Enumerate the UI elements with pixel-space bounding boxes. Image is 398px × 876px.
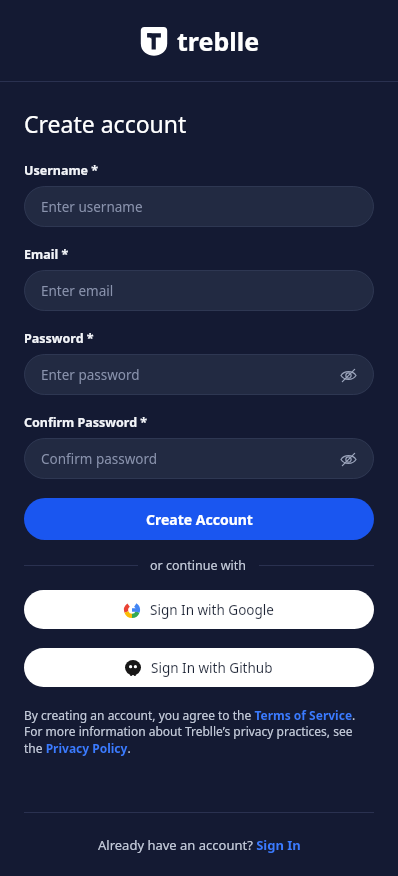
staticText: Sign In with Github xyxy=(151,659,273,677)
button[interactable]: Confirm password xyxy=(24,438,374,479)
staticText: Already have an account? Sign In xyxy=(98,836,301,854)
staticText: treblle xyxy=(177,24,260,58)
staticText: Create Account xyxy=(146,510,253,529)
button[interactable]: Show password xyxy=(336,363,360,387)
button[interactable]: Already have an account? Sign In xyxy=(90,830,309,860)
button[interactable]: Enter email xyxy=(24,270,374,311)
staticText: Create account xyxy=(24,108,187,139)
staticText: Confirm password xyxy=(41,450,336,468)
button[interactable]: Enter password xyxy=(24,354,374,395)
staticText: or continue with xyxy=(150,557,247,574)
staticText: Sign In with Google xyxy=(150,601,274,619)
button[interactable]: Sign In with Google xyxy=(24,590,374,629)
button[interactable]: Create Account xyxy=(24,498,374,540)
button[interactable]: Show password xyxy=(336,447,360,471)
staticText: Confirm Password * xyxy=(24,414,148,431)
staticText: Email * xyxy=(24,246,69,263)
staticText: Enter password xyxy=(41,366,336,384)
staticText: Username * xyxy=(24,162,99,179)
button[interactable]: By creating an account, you agree to the… xyxy=(24,707,374,757)
button[interactable]: Sign In with Github xyxy=(24,648,374,687)
staticText: Password * xyxy=(24,330,94,347)
staticText: Enter email xyxy=(41,282,360,300)
staticText: Enter username xyxy=(41,198,360,216)
button[interactable]: Enter username xyxy=(24,186,374,227)
